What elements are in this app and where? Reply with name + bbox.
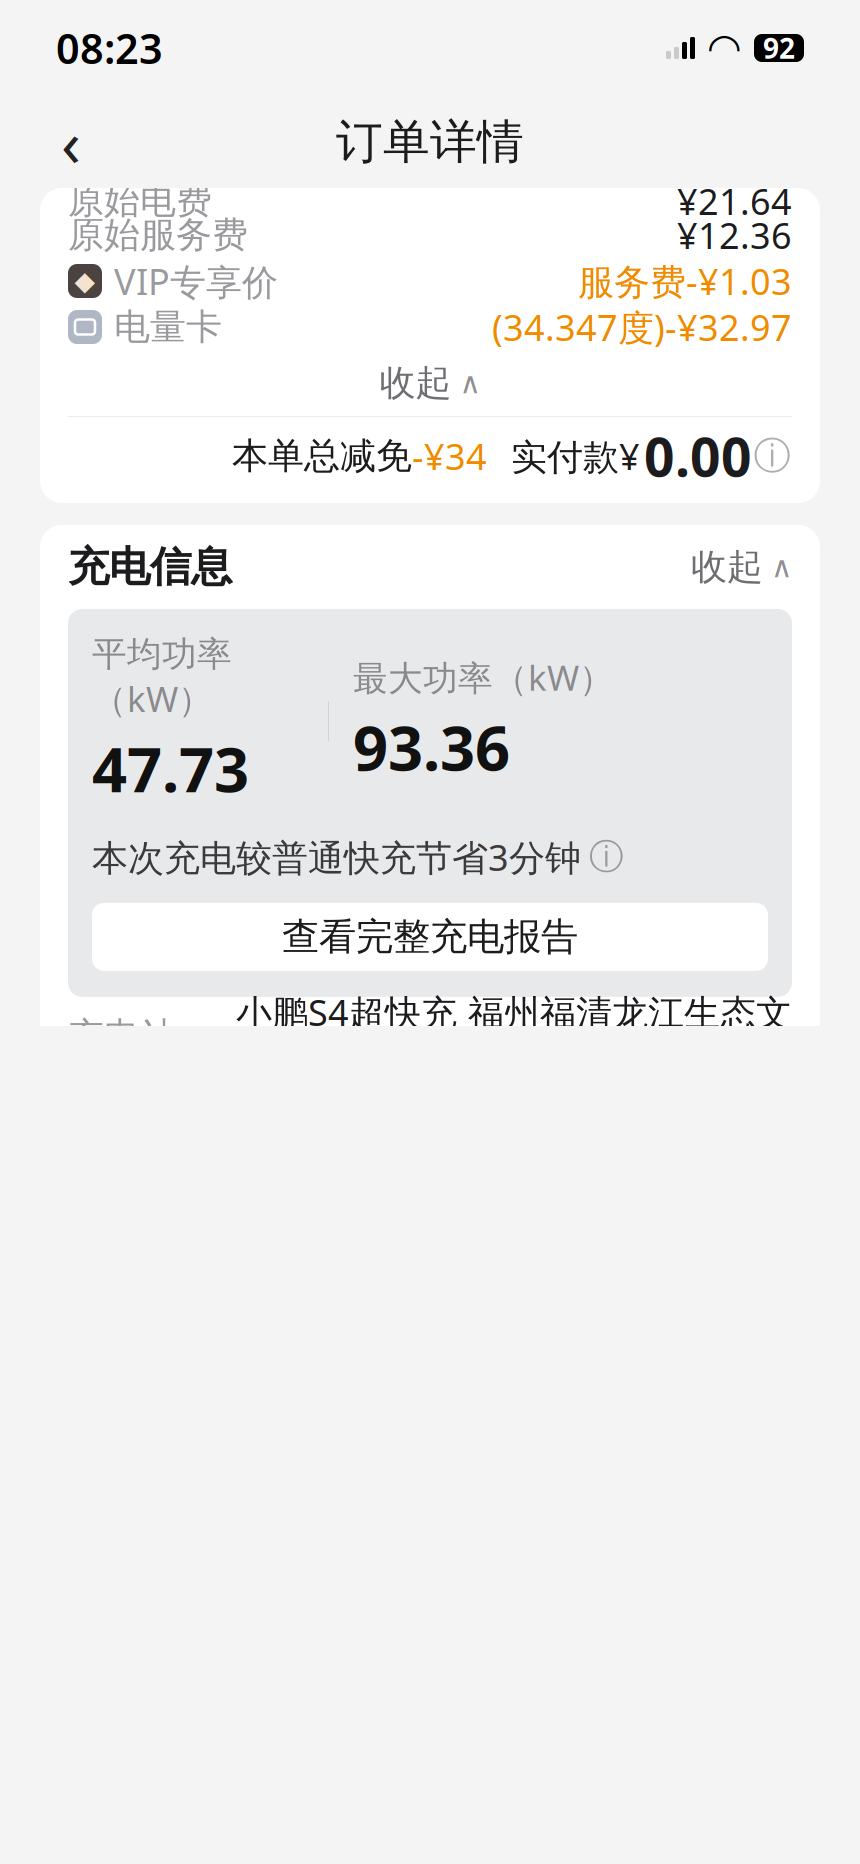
staticText: ‹ [61,99,81,184]
staticText: 原始电费 [68,179,212,223]
staticText: 电量卡 [114,305,222,349]
staticText: ⓘ [753,433,790,479]
staticText: -¥34 [412,432,487,480]
staticText: (34.347度)-¥32.97 [492,303,792,351]
button[interactable]: Back [36,107,106,177]
staticText: ¥21.64 [677,177,792,225]
staticText: 本单总减免 [232,434,412,478]
staticText: ◠ [709,25,740,71]
staticText: 本次充电较普通快充节省3分钟 [92,833,581,881]
staticText: ∧ [771,550,792,584]
staticText: 93.36 [353,706,510,788]
staticText: VIP专享价 [114,257,278,305]
staticText: ◆ [74,266,95,296]
staticText: ¥12.36 [677,211,792,259]
staticText: 原始服务费 [68,213,248,257]
staticText: 查看完整充电报告 [282,914,578,960]
staticText: 充电站 [68,1014,176,1058]
staticText: 订单详情 [336,113,524,171]
staticText: 收起 [379,361,451,405]
staticText: 92 [763,29,795,67]
staticText: 平均功率（kW） [92,633,232,722]
staticText: 充电信息 [68,542,232,592]
staticText: 47.73 [92,728,249,809]
staticText: 最大功率（kW） [353,654,614,700]
button[interactable]: 查看完整充电报告 [92,903,768,971]
staticText: 小鹏S4超快充 福州福清龙江生态文化… [236,988,792,1084]
button[interactable]: 实付款说明 [752,436,792,476]
staticText: 服务费-¥1.03 [578,257,792,305]
staticText: ⓘ [589,836,624,878]
staticText: 0.00 [644,421,752,491]
staticText: 08:23 [56,21,163,75]
staticText: 实付款¥ [511,432,640,480]
staticText: ∧ [459,366,480,400]
staticText: 收起 [691,545,763,589]
button[interactable]: 收起 [691,542,792,592]
button[interactable]: 收起 [68,350,792,416]
